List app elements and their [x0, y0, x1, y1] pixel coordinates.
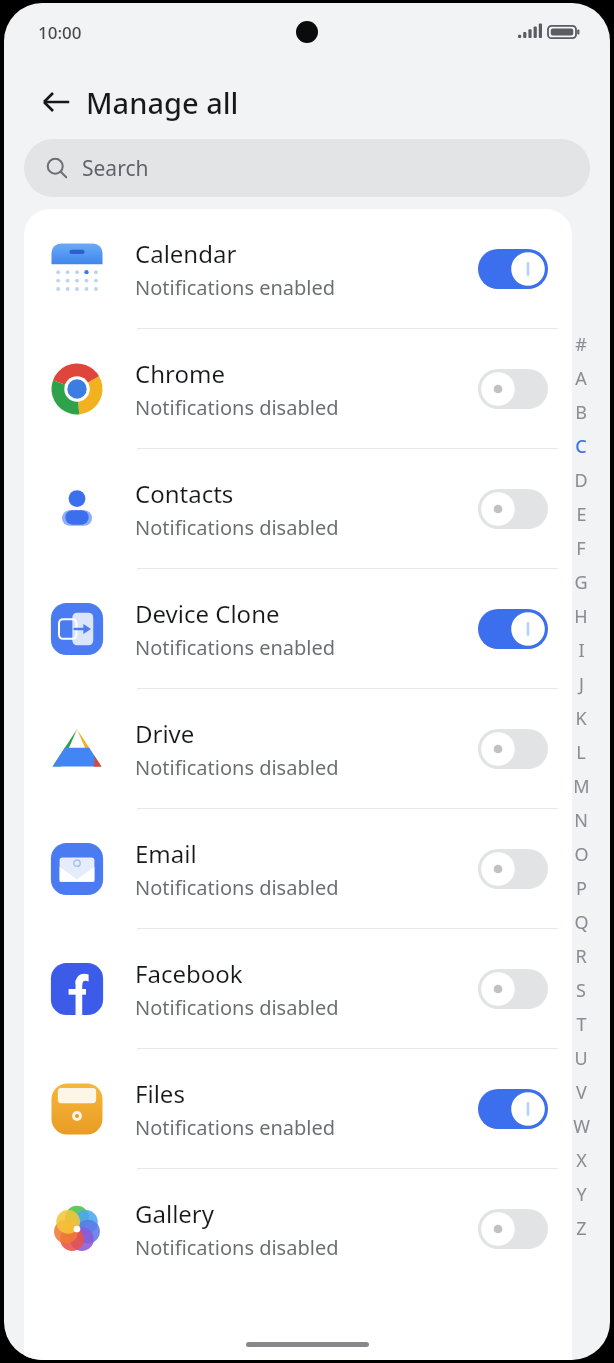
- staticText: Gallery: [135, 1197, 215, 1230]
- staticText: #: [575, 332, 587, 357]
- staticText: C: [575, 434, 587, 459]
- staticText: M: [573, 774, 590, 799]
- staticText: Z: [576, 1216, 587, 1241]
- button[interactable]: Disable notifications: [476, 243, 550, 295]
- staticText: Manage all: [86, 83, 239, 122]
- staticText: G: [574, 570, 588, 595]
- staticText: V: [576, 1080, 587, 1105]
- staticText: Facebook: [135, 957, 243, 990]
- button[interactable]: E: [566, 497, 596, 531]
- staticText: Contacts: [135, 477, 234, 510]
- staticText: Notifications disabled: [135, 394, 339, 421]
- button[interactable]: L: [566, 735, 596, 769]
- button[interactable]: J: [566, 667, 596, 701]
- button[interactable]: Enable notifications: [476, 723, 550, 775]
- button[interactable]: Calendar: [24, 209, 572, 329]
- button[interactable]: P: [566, 871, 596, 905]
- staticText: Notifications disabled: [135, 1234, 339, 1261]
- button[interactable]: V: [566, 1075, 596, 1109]
- staticText: R: [575, 944, 587, 969]
- button[interactable]: M: [566, 769, 596, 803]
- staticText: I: [578, 638, 585, 663]
- button[interactable]: S: [566, 973, 596, 1007]
- button[interactable]: Back: [32, 78, 80, 126]
- staticText: Chrome: [135, 357, 225, 390]
- staticText: P: [576, 876, 587, 901]
- button[interactable]: Y: [566, 1177, 596, 1211]
- button[interactable]: O: [566, 837, 596, 871]
- staticText: Drive: [135, 717, 195, 750]
- button[interactable]: Search: [24, 139, 590, 197]
- button[interactable]: K: [566, 701, 596, 735]
- staticText: E: [576, 502, 587, 527]
- button[interactable]: D: [566, 463, 596, 497]
- button[interactable]: Q: [566, 905, 596, 939]
- button[interactable]: Enable notifications: [476, 843, 550, 895]
- button[interactable]: Enable notifications: [476, 1203, 550, 1255]
- staticText: Y: [576, 1182, 587, 1207]
- staticText: Notifications enabled: [135, 634, 336, 661]
- button[interactable]: T: [566, 1007, 596, 1041]
- button[interactable]: Facebook: [24, 929, 572, 1049]
- staticText: Notifications disabled: [135, 994, 339, 1021]
- button[interactable]: Contacts: [24, 449, 572, 569]
- staticText: X: [576, 1148, 587, 1173]
- button[interactable]: Email: [24, 809, 572, 929]
- button[interactable]: B: [566, 395, 596, 429]
- staticText: J: [579, 672, 584, 697]
- button[interactable]: F: [566, 531, 596, 565]
- button[interactable]: Enable notifications: [476, 483, 550, 535]
- button[interactable]: X: [566, 1143, 596, 1177]
- button[interactable]: G: [566, 565, 596, 599]
- staticText: Notifications enabled: [135, 1114, 336, 1141]
- button[interactable]: Drive: [24, 689, 572, 809]
- staticText: Calendar: [135, 237, 237, 270]
- staticText: U: [574, 1046, 588, 1071]
- button[interactable]: Device Clone: [24, 569, 572, 689]
- staticText: T: [576, 1012, 587, 1037]
- staticText: Notifications disabled: [135, 874, 339, 901]
- staticText: Notifications disabled: [135, 754, 339, 781]
- staticText: B: [575, 400, 587, 425]
- button[interactable]: #: [566, 327, 596, 361]
- button[interactable]: Chrome: [24, 329, 572, 449]
- button[interactable]: R: [566, 939, 596, 973]
- button[interactable]: W: [566, 1109, 596, 1143]
- button[interactable]: N: [566, 803, 596, 837]
- staticText: W: [573, 1114, 590, 1139]
- button[interactable]: Enable notifications: [476, 963, 550, 1015]
- staticText: N: [574, 808, 588, 833]
- button[interactable]: Z: [566, 1211, 596, 1245]
- staticText: Files: [135, 1077, 185, 1110]
- staticText: S: [576, 978, 586, 1003]
- staticText: Email: [135, 837, 197, 870]
- staticText: Device Clone: [135, 597, 280, 630]
- staticText: Notifications enabled: [135, 274, 336, 301]
- button[interactable]: I: [566, 633, 596, 667]
- staticText: K: [575, 706, 587, 731]
- staticText: Q: [574, 910, 589, 935]
- staticText: L: [576, 740, 586, 765]
- staticText: 10:00: [38, 21, 82, 44]
- staticText: Search: [82, 154, 149, 183]
- button[interactable]: Files: [24, 1049, 572, 1169]
- button[interactable]: C: [566, 429, 596, 463]
- staticText: F: [576, 536, 586, 561]
- staticText: O: [574, 842, 589, 867]
- staticText: H: [574, 604, 588, 629]
- button[interactable]: Disable notifications: [476, 1083, 550, 1135]
- button[interactable]: U: [566, 1041, 596, 1075]
- button[interactable]: Disable notifications: [476, 603, 550, 655]
- button[interactable]: H: [566, 599, 596, 633]
- button[interactable]: A: [566, 361, 596, 395]
- staticText: A: [575, 366, 587, 391]
- button[interactable]: Gallery: [24, 1169, 572, 1289]
- staticText: Notifications disabled: [135, 514, 339, 541]
- button[interactable]: Enable notifications: [476, 363, 550, 415]
- staticText: D: [574, 468, 588, 493]
